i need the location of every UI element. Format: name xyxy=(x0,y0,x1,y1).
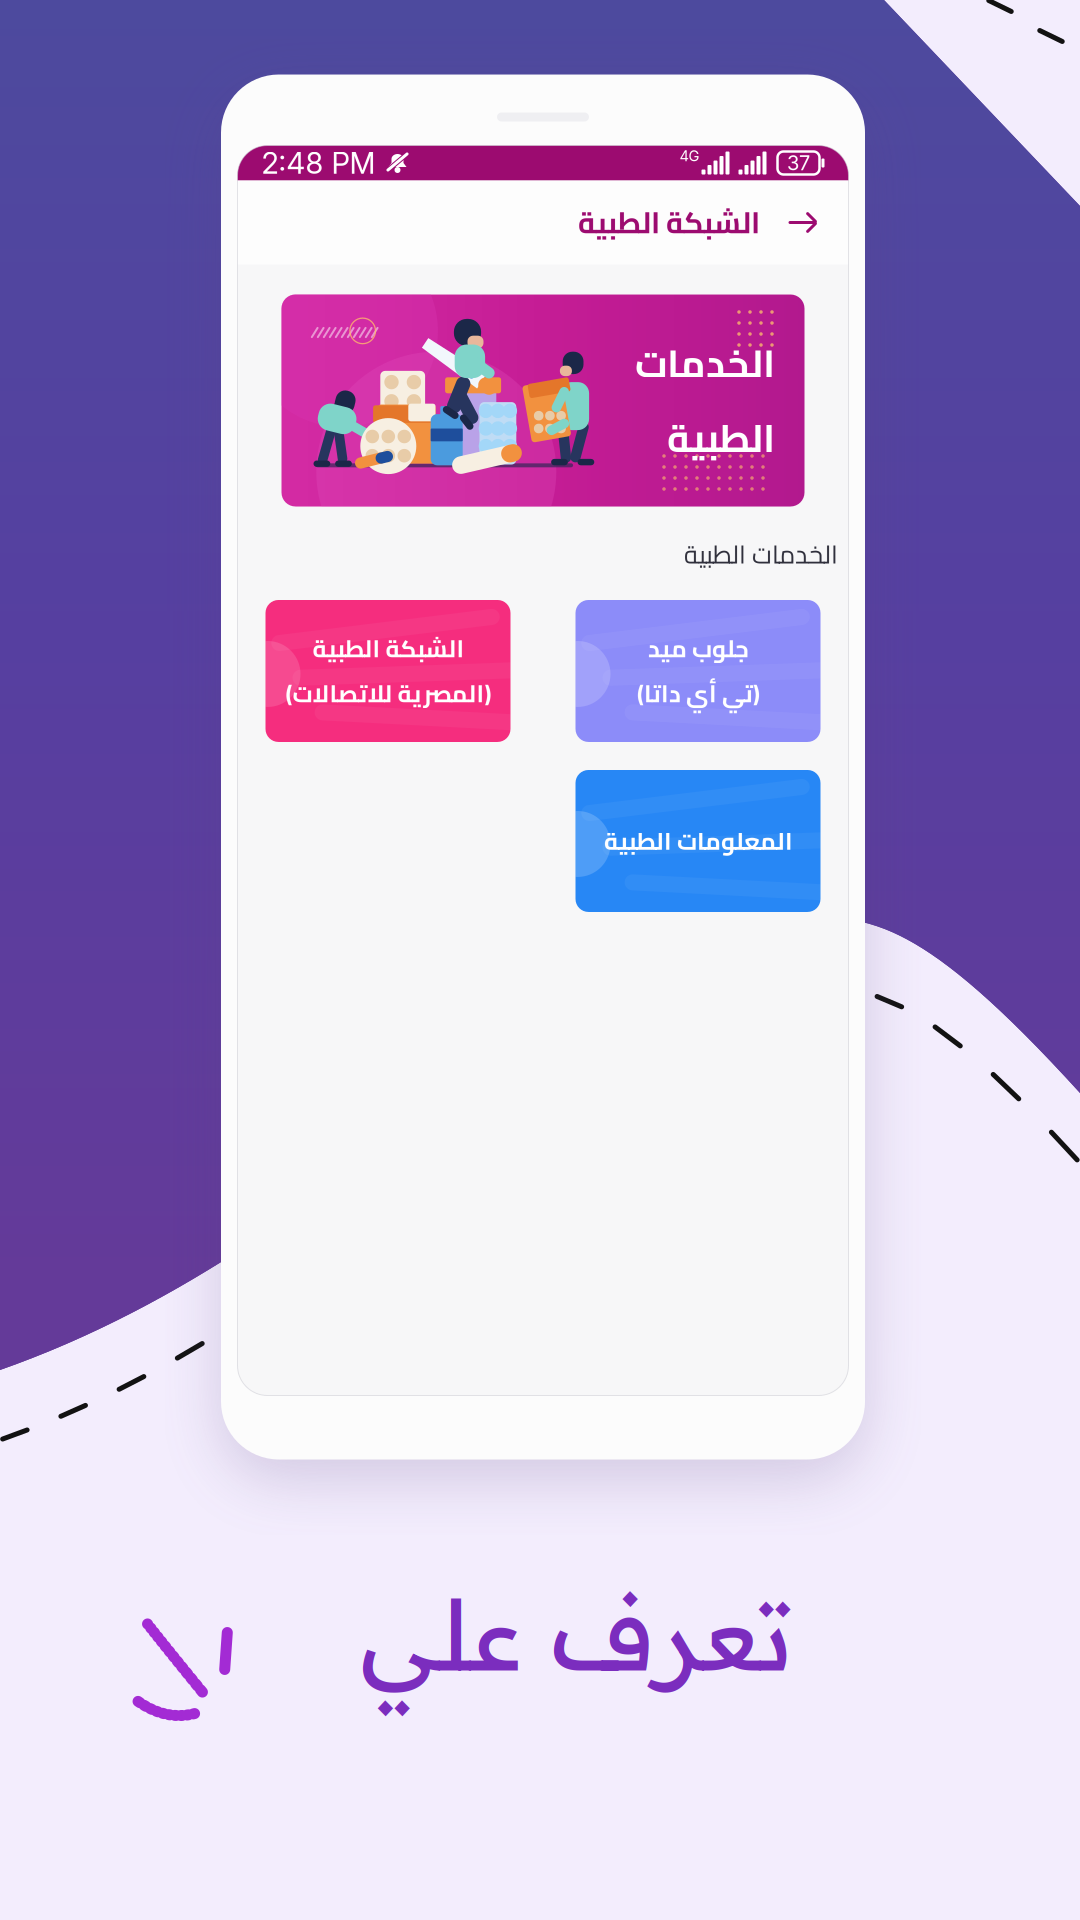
staticText: الشبكة الطبية xyxy=(312,626,464,671)
button[interactable]: الشبكة الطبية xyxy=(577,189,759,256)
staticText: 4G xyxy=(679,147,699,165)
staticText: (تي أي داتا) xyxy=(636,671,759,716)
button[interactable]: الشبكة الطبية xyxy=(265,600,510,742)
staticText: تعرف علي xyxy=(359,1573,792,1695)
button[interactable]: جلوب ميد xyxy=(575,600,820,742)
staticText: الخدمات الطبية xyxy=(683,530,837,578)
staticText: جلوب ميد xyxy=(647,626,748,671)
button[interactable]: الخدمات xyxy=(281,294,804,506)
staticText: المعلومات الطبية xyxy=(603,818,792,863)
staticText: الطبية xyxy=(666,401,774,474)
button[interactable]: المعلومات الطبية xyxy=(575,770,820,912)
staticText: 2:48 PM xyxy=(261,145,375,181)
button[interactable]: Back xyxy=(781,201,823,243)
staticText: الشبكة الطبية xyxy=(577,195,759,250)
staticText: 37 xyxy=(787,151,810,175)
staticText: الخدمات xyxy=(634,327,774,399)
staticText: (المصرية للاتصالات) xyxy=(285,671,491,716)
